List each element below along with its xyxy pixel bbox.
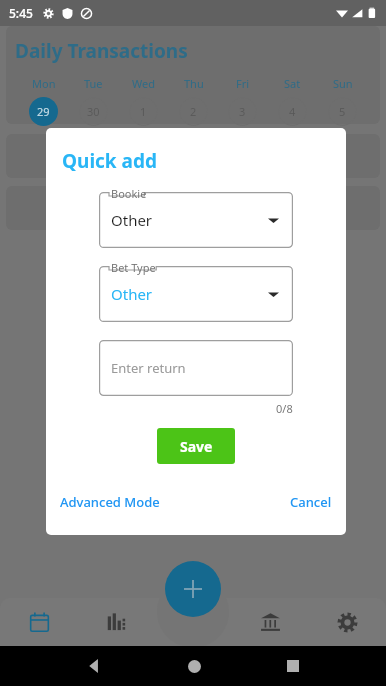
button[interactable]: Accounts (232, 598, 309, 646)
button[interactable]: Statistics (78, 598, 155, 646)
staticText: 0/8 (276, 401, 293, 416)
button[interactable]: Add transaction (165, 561, 221, 617)
staticText: Bookie (111, 186, 147, 201)
button[interactable]: Bookie (99, 192, 293, 248)
staticText: Other (111, 210, 153, 230)
staticText: 4 (289, 104, 296, 119)
button[interactable]: Advanced Mode (54, 487, 166, 517)
staticText: 30 (87, 104, 100, 119)
other: Back (87, 659, 101, 673)
staticText: Fri (236, 76, 250, 91)
other: Home (188, 660, 201, 673)
staticText: Cancel (290, 493, 332, 511)
staticText: 5 (339, 104, 346, 119)
staticText: Sun (333, 76, 353, 91)
staticText: 29 (37, 104, 50, 119)
staticText: Enter return (111, 359, 186, 377)
button[interactable]: Settings (309, 598, 386, 646)
button[interactable]: Save (157, 428, 235, 464)
staticText: Quick add (62, 148, 157, 174)
button[interactable]: Bet Type (99, 266, 293, 322)
button[interactable]: Enter return (99, 340, 293, 396)
button[interactable]: Cancel (284, 487, 338, 517)
staticText: 1 (140, 104, 147, 119)
staticText: 5:45 (9, 5, 33, 21)
staticText: Thu (184, 76, 204, 91)
staticText: Mon (32, 76, 56, 91)
staticText: 3 (239, 104, 246, 119)
staticText: Save (180, 437, 213, 456)
staticText: 2 (190, 104, 197, 119)
button[interactable]: Calendar (0, 598, 78, 646)
staticText: Daily Transactions (15, 38, 188, 64)
staticText: Other (111, 284, 153, 304)
staticText: Wed (132, 76, 155, 91)
staticText: Advanced Mode (60, 493, 160, 511)
staticText: Tue (84, 76, 103, 91)
staticText: Bet Type (111, 260, 156, 275)
staticText: Sat (284, 76, 301, 91)
